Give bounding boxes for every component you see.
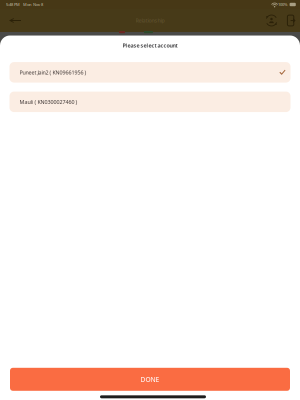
staticText: Mon Nov 8	[23, 2, 43, 7]
staticText: Mauli ( KN0300027460 )	[19, 98, 77, 105]
staticText: Please select account	[122, 42, 177, 49]
button[interactable]: DONE	[10, 368, 290, 391]
staticText: Puneet Jain2 ( KN09661956 )	[19, 69, 86, 76]
button[interactable]: Back	[4, 9, 26, 32]
staticText: Relationship	[135, 17, 164, 24]
button[interactable]: Switch account	[263, 9, 280, 32]
button[interactable]: Mauli ( KN0300027460 )	[9, 92, 290, 112]
staticText: DONE	[140, 375, 159, 384]
staticText: 100%	[278, 2, 288, 7]
button[interactable]: Log out	[285, 9, 298, 32]
staticText: 5:48 PM	[6, 2, 20, 7]
button[interactable]: Puneet Jain2 ( KN09661956 )	[9, 62, 290, 83]
